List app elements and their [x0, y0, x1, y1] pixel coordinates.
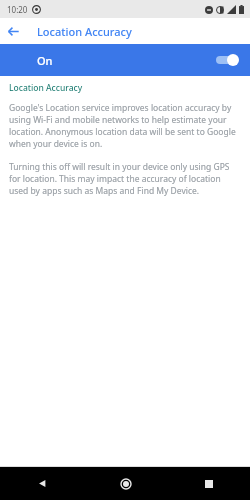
staticText: 10:20 — [7, 4, 28, 15]
button[interactable]: Back — [0, 467, 84, 500]
staticText: Location Accuracy — [9, 82, 83, 94]
staticText: Google's Location service improves locat… — [9, 102, 240, 150]
staticText: Location Accuracy — [37, 24, 132, 39]
button[interactable]: Home — [84, 467, 167, 500]
button[interactable]: On — [0, 44, 250, 76]
staticText: Turning this off will result in your dev… — [9, 161, 240, 197]
staticText: On — [37, 53, 53, 68]
button[interactable]: Navigate up — [0, 18, 26, 44]
button[interactable]: Recent apps — [167, 467, 250, 500]
